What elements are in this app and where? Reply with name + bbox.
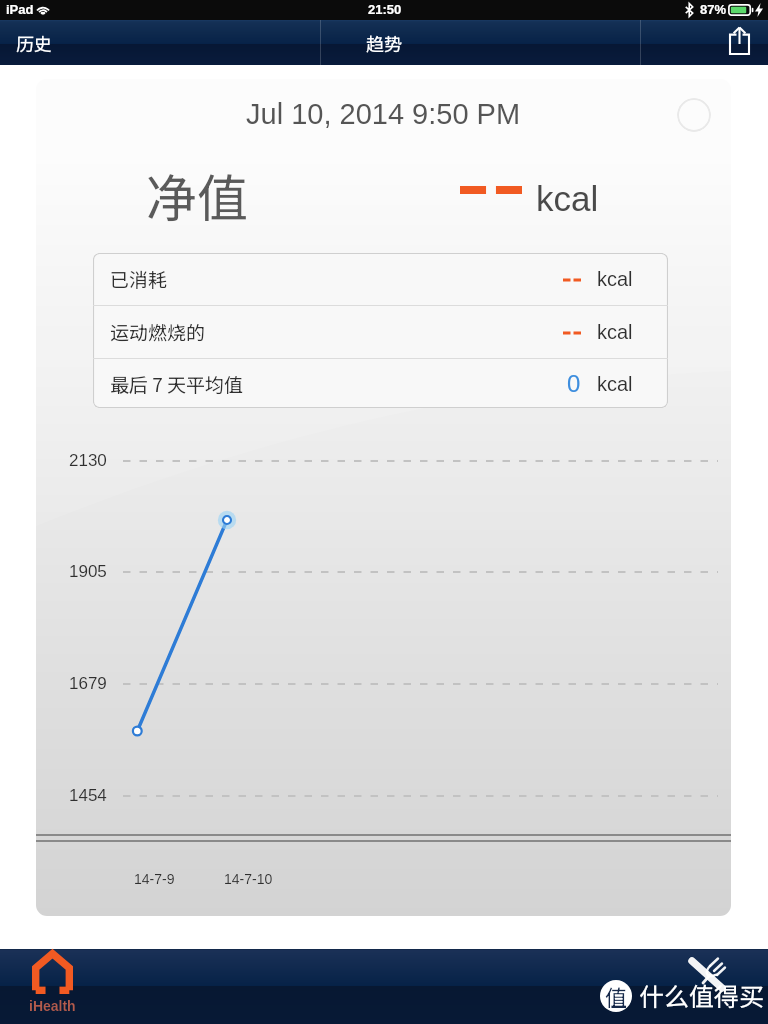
staticText: kcal [597,268,633,290]
staticText: iHealth [29,998,76,1014]
staticText: 运动燃烧的 [110,318,206,346]
staticText: kcal [597,373,633,395]
staticText: 趋势 [366,30,402,56]
staticText: iPad [6,2,34,17]
staticText: 1454 [69,786,107,805]
button[interactable]: iHealth [22,952,83,1014]
button[interactable]: 历史 [0,20,320,65]
staticText: 最后 7 天平均值 [110,370,244,398]
staticText: 已消耗 [110,265,168,293]
staticText: 什么值得买 [639,977,765,1013]
staticText: 历史 [16,30,52,56]
staticText: 87% [700,2,727,17]
staticText: 21:50 [368,2,402,17]
button[interactable]: 已消耗 [93,253,668,305]
staticText: 1679 [69,674,107,693]
button[interactable]: Refresh [677,98,711,132]
staticText: Jul 10, 2014 9:50 PM [246,98,521,130]
button[interactable]: 最后 7 天平均值 [93,359,668,408]
staticText: 2130 [69,451,107,470]
staticText: 1905 [69,562,107,581]
staticText: 14-7-9 [134,871,175,887]
button[interactable] [321,20,640,65]
staticText: kcal [597,321,633,343]
staticText: kcal [536,179,599,218]
staticText: 0 [567,370,581,397]
button[interactable]: Share [641,20,768,65]
staticText: 净值 [146,158,249,232]
staticText: 14-7-10 [224,871,273,887]
button[interactable]: 运动燃烧的 [93,306,668,358]
staticText: 值 [605,980,628,1012]
